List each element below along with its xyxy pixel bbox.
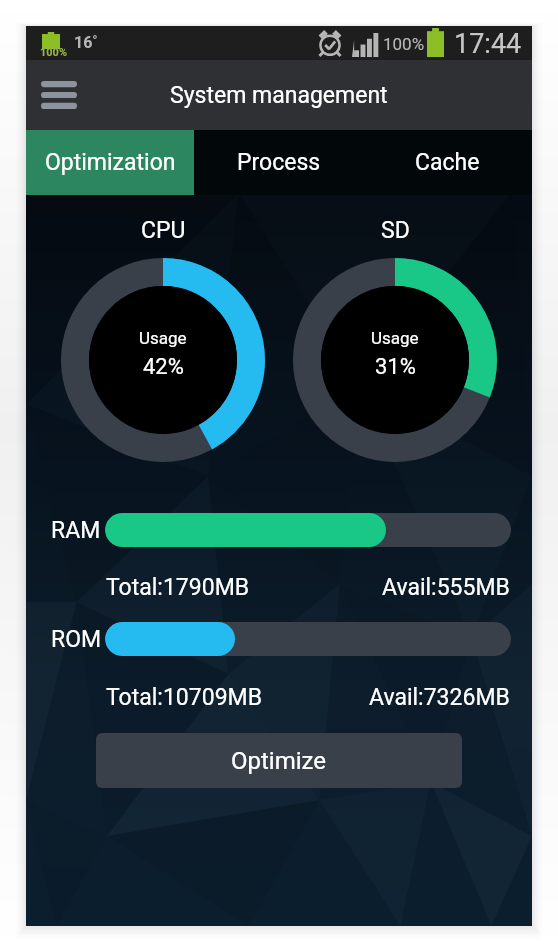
staticText: Usage	[139, 328, 187, 348]
staticText: Avail:7326MB	[369, 684, 510, 711]
staticText: Total:10709MB	[106, 684, 262, 711]
staticText: Process	[237, 149, 321, 176]
staticText: Usage	[371, 328, 419, 348]
staticText: 17:44	[454, 28, 522, 60]
staticText: 42%	[143, 354, 184, 380]
staticText: CPU	[141, 217, 186, 244]
staticText: 100%	[383, 34, 425, 54]
button[interactable]: Optimization	[26, 130, 194, 195]
staticText: RAM	[51, 517, 101, 544]
staticText: Optimize	[231, 747, 327, 775]
staticText: 16˚	[74, 33, 98, 52]
staticText: ROM	[51, 626, 102, 653]
button[interactable]: Cache	[363, 130, 532, 195]
staticText: 31%	[375, 354, 416, 380]
button[interactable]: Process	[194, 130, 363, 195]
staticText: System management	[170, 82, 388, 109]
staticText: Cache	[415, 149, 480, 176]
staticText: Total:1790MB	[106, 574, 250, 601]
staticText: Avail:555MB	[382, 574, 510, 601]
button[interactable]: Menu	[30, 66, 88, 124]
button[interactable]: Optimize	[96, 733, 462, 788]
staticText: 100%	[40, 46, 68, 59]
staticText: SD	[381, 217, 410, 244]
staticText: Optimization	[45, 149, 176, 176]
